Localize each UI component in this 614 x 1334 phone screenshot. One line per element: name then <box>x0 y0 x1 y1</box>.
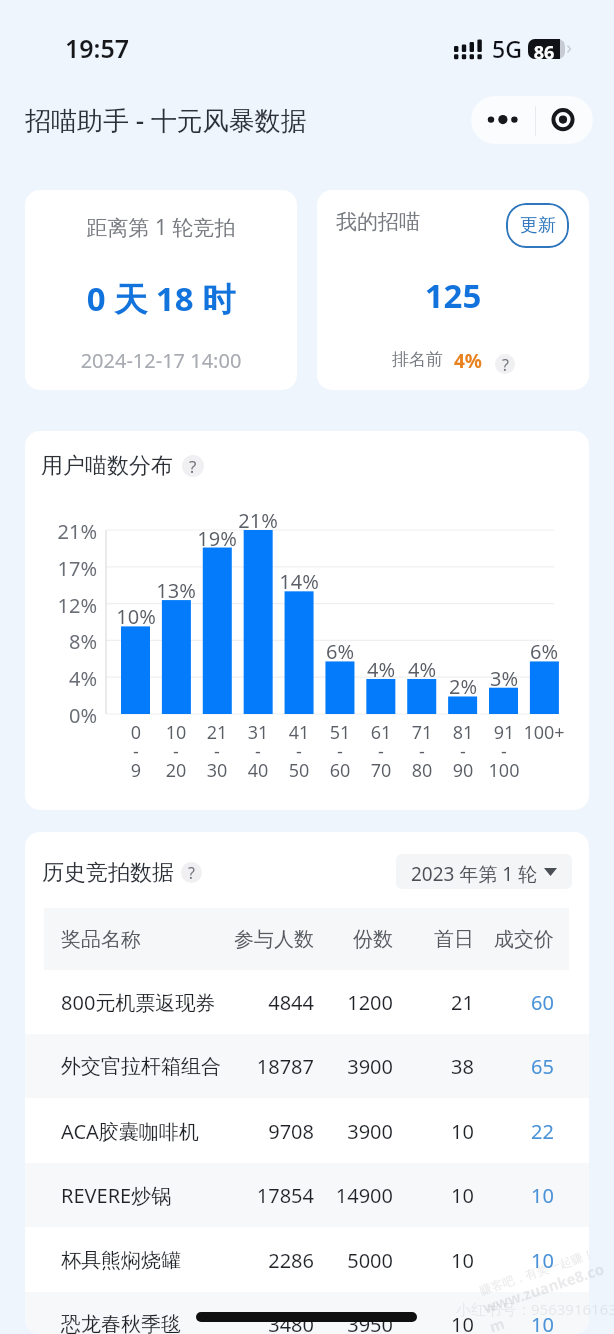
staticText: 60 <box>300 758 380 783</box>
staticText: 0% <box>25 702 97 729</box>
staticText: 10 <box>414 1182 554 1209</box>
staticText: - <box>96 739 176 764</box>
staticText: 70 <box>341 758 421 783</box>
button[interactable]: 外交官拉杆箱组合 <box>25 1034 589 1098</box>
staticText: 杯具熊焖烧罐 <box>61 1248 181 1273</box>
staticText: 4% <box>454 348 483 374</box>
button[interactable]: 距离第 1 轮竞拍 <box>25 190 297 390</box>
staticText: - <box>382 739 462 764</box>
staticText: 3900 <box>253 1053 393 1080</box>
staticText: 125 <box>317 273 589 318</box>
staticText: 外交官拉杆箱组合 <box>61 1054 221 1079</box>
staticText: 14900 <box>253 1182 393 1209</box>
staticText: 历史竞拍数据 <box>42 859 174 887</box>
staticText: 51 <box>300 720 380 745</box>
staticText: 4% <box>382 656 462 683</box>
staticText: 成交价 <box>414 927 554 952</box>
button[interactable]: REVERE炒锅 <box>25 1163 589 1227</box>
staticText: - <box>177 739 257 764</box>
button[interactable]: 更新 <box>506 203 569 248</box>
staticText: 18787 <box>174 1053 314 1080</box>
staticText: 5000 <box>253 1247 393 1274</box>
staticText: 用户喵数分布 <box>41 452 173 480</box>
staticText: 31 <box>218 720 298 745</box>
staticText: 4% <box>25 665 97 692</box>
staticText: 6% <box>300 638 380 665</box>
staticText: 5G <box>492 33 522 64</box>
staticText: 10 <box>414 1311 554 1334</box>
staticText: 17% <box>25 555 97 582</box>
staticText: 65 <box>414 1053 554 1080</box>
staticText: 21 <box>177 720 257 745</box>
staticText: - <box>218 739 298 764</box>
staticText: ? <box>502 354 509 374</box>
staticText: 9708 <box>174 1118 314 1145</box>
staticText: 1200 <box>253 989 393 1016</box>
staticText: 19:57 <box>65 31 130 65</box>
staticText: 8% <box>25 628 97 655</box>
staticText: 21 <box>334 989 474 1016</box>
button[interactable]: ACA胶囊咖啡机 <box>25 1099 589 1163</box>
staticText: - <box>259 739 339 764</box>
staticText: - <box>341 739 421 764</box>
staticText: 4844 <box>174 989 314 1016</box>
staticText: ? <box>188 862 195 883</box>
staticText: 6% <box>504 638 584 665</box>
staticText: 10 <box>334 1311 474 1334</box>
staticText: 19% <box>177 525 257 552</box>
staticText: 10 <box>334 1247 474 1274</box>
staticText: - <box>423 739 503 764</box>
staticText: 38 <box>334 1053 474 1080</box>
staticText: ? <box>189 455 197 477</box>
staticText: 奖品名称 <box>61 927 141 952</box>
staticText: 更新 <box>520 214 556 237</box>
button[interactable]: 奖品名称 <box>25 908 589 970</box>
staticText: 2023 年第 1 轮 <box>411 861 538 887</box>
staticText: 排名前 <box>392 349 443 370</box>
staticText: 3950 <box>253 1311 393 1334</box>
staticText: 30 <box>177 758 257 783</box>
staticText: 17854 <box>174 1182 314 1209</box>
staticText: 80 <box>382 758 462 783</box>
staticText: 60 <box>414 989 554 1016</box>
staticText: 2024-12-17 14:00 <box>25 347 297 374</box>
staticText: 10 <box>136 720 216 745</box>
staticText: 2% <box>423 673 503 700</box>
button[interactable]: 2023 年第 1 轮 <box>396 854 572 889</box>
staticText: 9 <box>96 758 176 783</box>
staticText: 3900 <box>253 1118 393 1145</box>
staticText: 21% <box>25 518 97 545</box>
staticText: 小红书号：95639161631 <box>456 1299 614 1319</box>
button[interactable]: 800元机票返现券 <box>25 970 589 1034</box>
staticText: 90 <box>423 758 503 783</box>
button[interactable]: 杯具熊焖烧罐 <box>25 1228 589 1292</box>
staticText: 21% <box>218 507 298 534</box>
staticText: 86 <box>528 40 560 65</box>
staticText: - <box>136 739 216 764</box>
staticText: 距离第 1 轮竞拍 <box>25 213 297 242</box>
staticText: 91 <box>464 720 544 745</box>
staticText: 50 <box>259 758 339 783</box>
button[interactable]: 我的招喵 <box>317 190 589 390</box>
staticText: 招喵助手 - 十元风暴数据 <box>25 102 307 138</box>
staticText: 我的招喵 <box>336 209 420 235</box>
staticText: 10 <box>334 1182 474 1209</box>
staticText: 赚客吧，有奖一起赚！ <box>477 1246 596 1298</box>
staticText: 61 <box>341 720 421 745</box>
staticText: 参与人数 <box>174 927 314 952</box>
staticText: 4% <box>341 656 421 683</box>
button[interactable]: More options <box>471 96 536 144</box>
staticText: 0 天 18 时 <box>25 276 297 321</box>
staticText: 恐龙春秋季毯 <box>61 1312 181 1334</box>
button[interactable]: 恐龙春秋季毯 <box>25 1292 589 1334</box>
staticText: REVERE炒锅 <box>61 1182 172 1209</box>
staticText: ACA胶囊咖啡机 <box>61 1118 199 1145</box>
staticText: 81 <box>423 720 503 745</box>
staticText: 20 <box>136 758 216 783</box>
staticText: 41 <box>259 720 339 745</box>
staticText: 0 <box>96 720 176 745</box>
staticText: 份数 <box>253 927 393 952</box>
staticText: 首日 <box>334 927 474 952</box>
button[interactable]: Close mini program <box>536 96 593 144</box>
staticText: - <box>300 739 380 764</box>
